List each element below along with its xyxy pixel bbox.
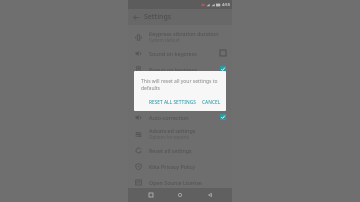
button[interactable]: Keypress vibration duration bbox=[128, 28, 232, 45]
staticText: Auto-correction bbox=[149, 114, 189, 121]
button[interactable]: Auto-correction bbox=[128, 109, 232, 125]
button[interactable]: Home bbox=[173, 188, 187, 202]
staticText: This will reset all your settings to def… bbox=[141, 78, 222, 92]
button[interactable]: Recents bbox=[144, 188, 158, 202]
button[interactable]: Back bbox=[128, 9, 144, 25]
button[interactable]: Back bbox=[203, 188, 217, 202]
staticText: Keypress vibration duration bbox=[149, 30, 219, 37]
button[interactable]: RESET ALL SETTINGS bbox=[148, 98, 197, 107]
staticText: CANCEL bbox=[202, 99, 221, 106]
staticText: Number Row bbox=[149, 82, 183, 89]
button[interactable]: Popup on keypress bbox=[128, 61, 232, 77]
staticText: System default bbox=[149, 37, 180, 43]
button[interactable]: CANCEL bbox=[201, 98, 222, 107]
staticText: Sound on keypress bbox=[149, 50, 197, 57]
button[interactable]: Number Row bbox=[128, 77, 232, 93]
staticText: Popup on keypress bbox=[149, 66, 198, 73]
staticText: Options for experts bbox=[149, 134, 189, 140]
staticText: Kika Privacy Policy bbox=[149, 163, 196, 170]
staticText: Show emoji key bbox=[149, 98, 189, 105]
staticText: RESET ALL SETTINGS bbox=[149, 99, 196, 106]
staticText: 4:55 bbox=[222, 2, 230, 7]
button[interactable]: Show emoji key bbox=[128, 93, 232, 109]
button[interactable]: Advanced settings bbox=[128, 125, 232, 142]
button[interactable]: Reset all settings bbox=[128, 142, 232, 158]
button[interactable]: Kika Privacy Policy bbox=[128, 158, 232, 174]
staticText: Reset all settings bbox=[149, 147, 192, 154]
button[interactable]: Sound on keypress bbox=[128, 45, 232, 61]
button[interactable]: Open Source License bbox=[128, 174, 232, 190]
staticText: Open Source License bbox=[149, 179, 202, 186]
staticText: Advanced settings bbox=[149, 127, 196, 134]
staticText: Settings bbox=[144, 12, 172, 22]
